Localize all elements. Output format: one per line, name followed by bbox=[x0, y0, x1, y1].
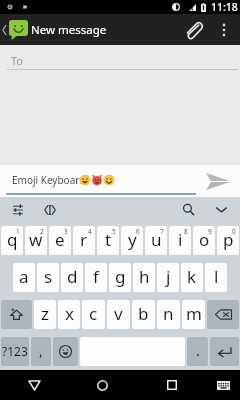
button[interactable]: g bbox=[109, 263, 131, 292]
button[interactable]: Home bbox=[68, 370, 137, 400]
button[interactable]: Change keyboard bbox=[206, 370, 240, 400]
staticText: . bbox=[196, 341, 200, 360]
button[interactable]: u bbox=[145, 226, 167, 255]
staticText: u bbox=[151, 228, 162, 251]
button[interactable]: h bbox=[133, 263, 155, 292]
other: Navigate up bbox=[2, 24, 7, 36]
staticText: m bbox=[186, 302, 202, 325]
staticText: , bbox=[39, 341, 43, 360]
button[interactable]: Attach bbox=[178, 14, 208, 45]
button[interactable]: x bbox=[58, 300, 80, 329]
staticText: ?123 bbox=[2, 343, 28, 359]
button[interactable]: k bbox=[181, 263, 203, 292]
button[interactable]: Recent apps bbox=[137, 370, 206, 400]
staticText: p bbox=[223, 228, 234, 251]
staticText: Emoji Keyboard bbox=[12, 173, 86, 187]
staticText: 1 bbox=[16, 227, 20, 236]
button[interactable]: r bbox=[73, 226, 95, 255]
staticText: f bbox=[93, 265, 99, 288]
button[interactable]: p bbox=[217, 226, 239, 255]
staticText: q bbox=[7, 228, 18, 251]
button[interactable]: More options bbox=[208, 14, 240, 45]
button[interactable]: . bbox=[187, 337, 208, 366]
staticText: d bbox=[67, 265, 78, 288]
staticText: New message bbox=[31, 22, 107, 38]
button[interactable]: ?123 bbox=[1, 337, 29, 366]
staticText: v bbox=[114, 302, 123, 325]
staticText: 9 bbox=[208, 227, 212, 236]
button[interactable]: f bbox=[85, 263, 107, 292]
staticText: w bbox=[29, 228, 43, 251]
staticText: b bbox=[138, 302, 149, 325]
button[interactable]: m bbox=[182, 300, 205, 329]
button[interactable]: Backspace bbox=[207, 300, 239, 329]
button[interactable]: n bbox=[157, 300, 180, 329]
button[interactable]: a bbox=[13, 263, 35, 292]
button[interactable]: Send bbox=[196, 165, 240, 197]
button[interactable]: c bbox=[82, 300, 105, 329]
staticText: 2 bbox=[40, 227, 44, 236]
button[interactable]: Navigate up bbox=[0, 20, 30, 40]
staticText: 11:18 bbox=[211, 0, 238, 14]
button[interactable]: v bbox=[107, 300, 130, 329]
button[interactable]: Back bbox=[0, 370, 68, 400]
staticText: 8 bbox=[184, 227, 188, 236]
button[interactable]: Enter bbox=[210, 337, 239, 366]
staticText: 5 bbox=[112, 227, 116, 236]
button[interactable]: Cursor control bbox=[35, 197, 65, 222]
button[interactable]: w bbox=[25, 226, 47, 255]
staticText: j bbox=[166, 265, 171, 288]
staticText: t bbox=[105, 228, 112, 251]
button[interactable]: i bbox=[169, 226, 191, 255]
button[interactable]: z bbox=[34, 300, 56, 329]
staticText: To bbox=[11, 53, 24, 68]
button[interactable]: b bbox=[132, 300, 155, 329]
staticText: 4 bbox=[88, 227, 92, 236]
staticText: e bbox=[55, 228, 65, 251]
staticText: s bbox=[44, 265, 53, 288]
staticText: 6 bbox=[136, 227, 140, 236]
staticText: l bbox=[214, 265, 219, 288]
staticText: i bbox=[178, 228, 183, 251]
button[interactable]: s bbox=[37, 263, 59, 292]
button[interactable]: q bbox=[1, 226, 23, 255]
button[interactable]: Emoji bbox=[53, 337, 78, 366]
staticText: r bbox=[80, 228, 88, 251]
button[interactable]: t bbox=[97, 226, 119, 255]
staticText: k bbox=[187, 265, 197, 288]
staticText: 3 bbox=[64, 227, 68, 236]
button[interactable]: , bbox=[31, 337, 51, 366]
staticText: a bbox=[19, 265, 29, 288]
button[interactable]: Keyboard settings bbox=[0, 197, 35, 222]
staticText: x bbox=[65, 302, 74, 325]
staticText: 0 bbox=[232, 227, 236, 236]
button[interactable]: j bbox=[157, 263, 179, 292]
staticText: c bbox=[89, 302, 98, 325]
button[interactable]: d bbox=[61, 263, 83, 292]
button[interactable]: Hide keyboard bbox=[202, 197, 240, 222]
staticText: y bbox=[128, 228, 137, 251]
staticText: 7 bbox=[160, 227, 164, 236]
button[interactable]: l bbox=[205, 263, 227, 292]
button[interactable]: o bbox=[193, 226, 215, 255]
staticText: o bbox=[199, 228, 210, 251]
button[interactable]: e bbox=[49, 226, 71, 255]
button[interactable]: Search bbox=[175, 197, 202, 222]
staticText: g bbox=[115, 265, 126, 288]
staticText: z bbox=[41, 302, 49, 325]
staticText: h bbox=[139, 265, 150, 288]
button[interactable]: y bbox=[121, 226, 143, 255]
button[interactable]: Shift bbox=[1, 300, 32, 329]
staticText: n bbox=[163, 302, 174, 325]
